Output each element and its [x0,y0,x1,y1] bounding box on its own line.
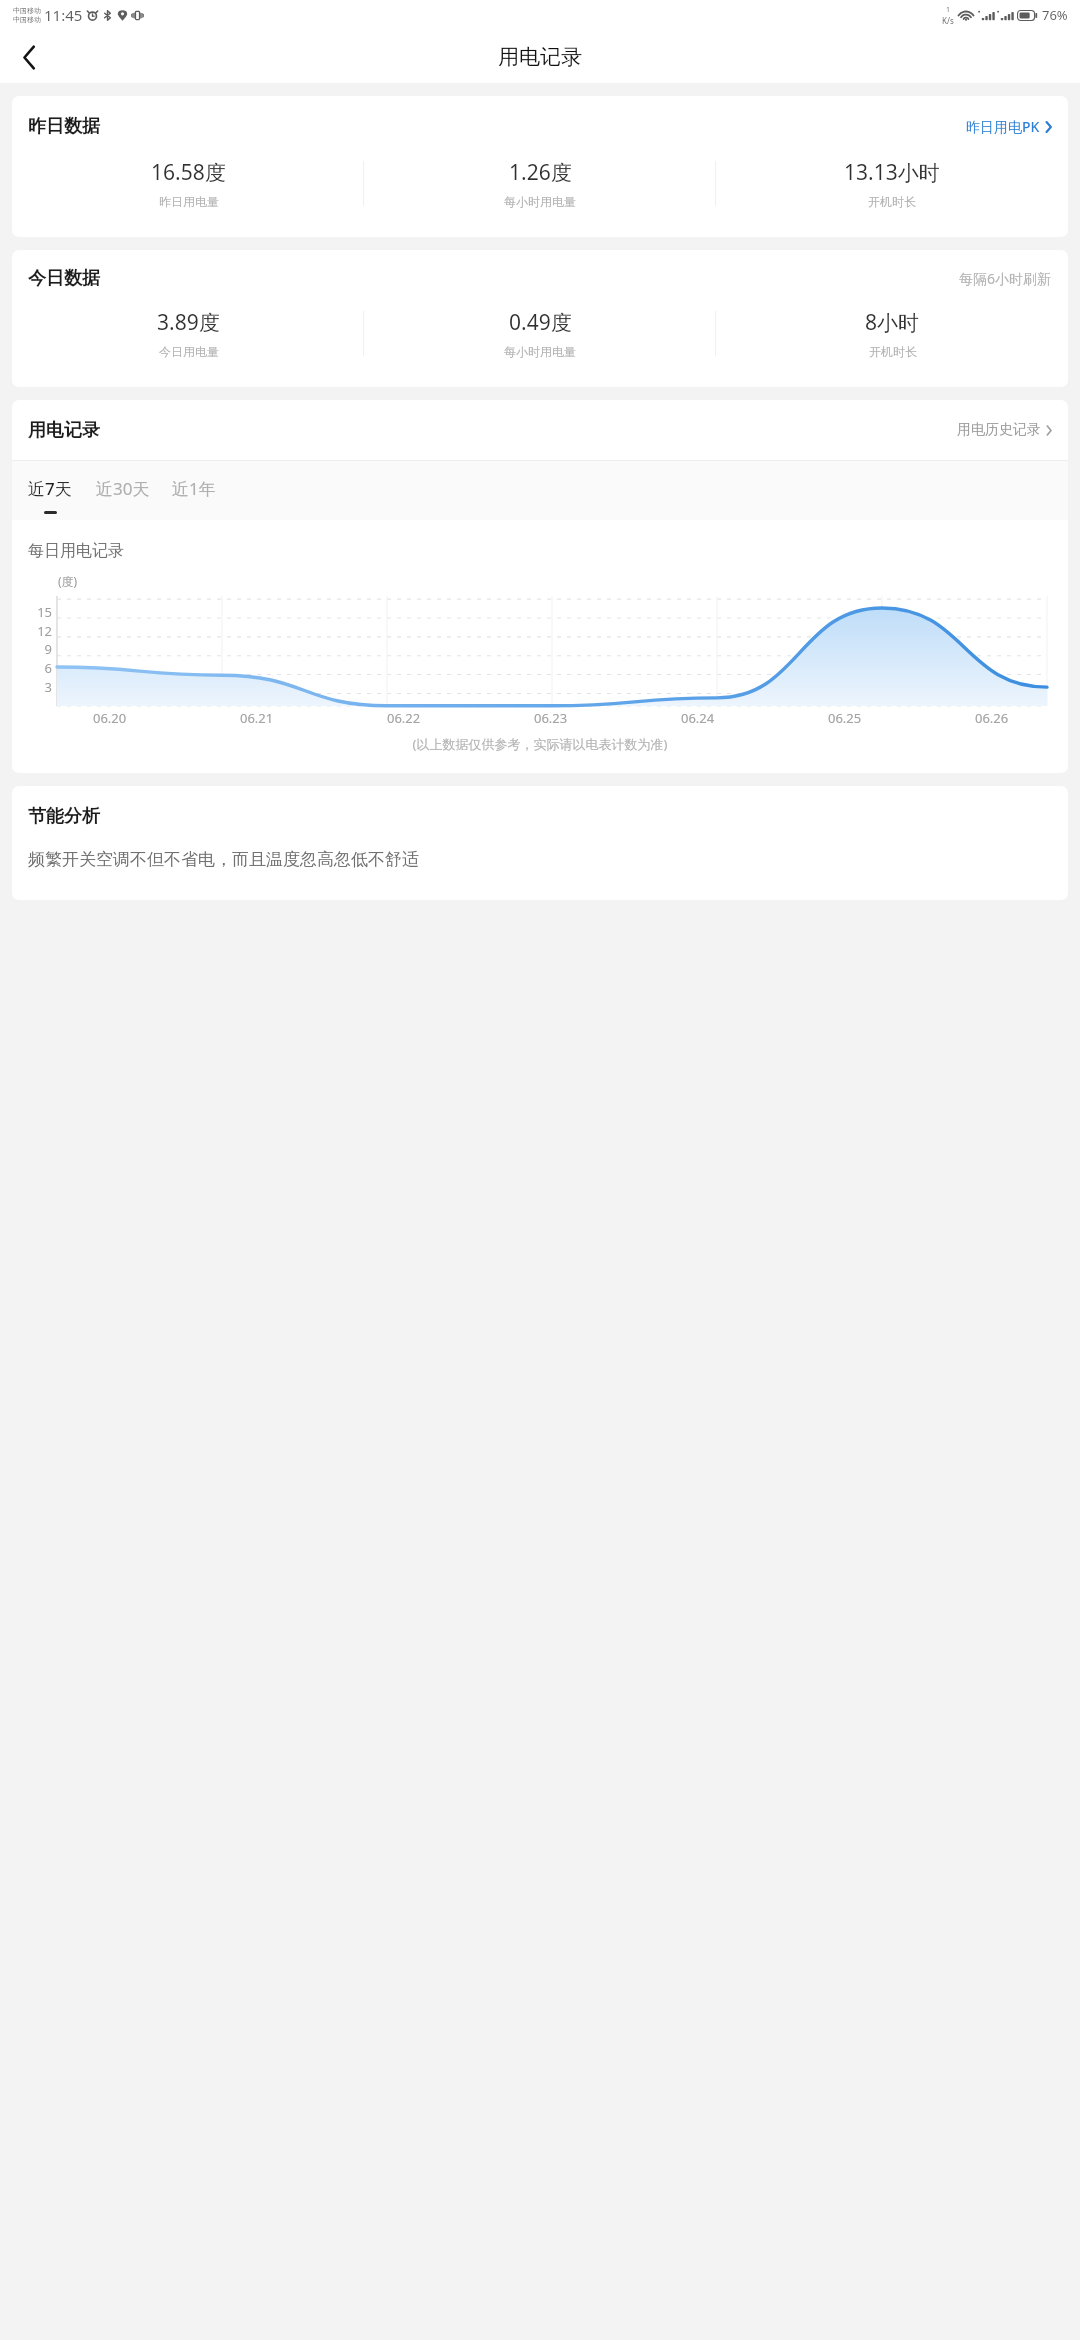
staticText: 3.89度 [157,308,220,337]
staticText: 06.21 [240,709,274,727]
staticText: 昨日数据 [28,115,100,138]
staticText: 3 [12,678,52,696]
staticText: 近1年 [172,477,216,500]
staticText: 8小时 [865,308,920,337]
staticText: 1 [946,5,951,15]
staticText: 06.26 [975,709,1009,727]
staticText: 16.58度 [151,158,226,187]
button[interactable]: 用电历史记录 [957,417,1052,443]
button[interactable]: 返回 [6,34,52,80]
staticText: 用电记录 [28,419,100,442]
staticText: 用电历史记录 [957,421,1041,439]
staticText: 近30天 [96,477,150,500]
button[interactable]: 近30天 [96,477,150,520]
staticText: 每隔6小时刷新 [959,269,1052,288]
staticText: 中国移动 [13,15,41,24]
staticText: 节能分析 [28,805,100,828]
button[interactable]: 近1年 [172,477,216,520]
staticText: K/s [942,15,954,26]
staticText: 每日用电记录 [28,541,124,561]
staticText: 06.22 [387,709,421,727]
button[interactable]: 近7天 [28,477,72,520]
staticText: 9 [12,640,52,658]
staticText: 76% [1042,6,1068,24]
staticText: (度) [58,573,78,589]
staticText: 12 [12,622,52,640]
staticText: 用电记录 [498,44,582,70]
staticText: 昨日用电量 [159,194,219,209]
button[interactable]: 昨日用电PK [966,113,1052,140]
staticText: 每小时用电量 [504,194,576,209]
staticText: 06.25 [828,709,862,727]
staticText: 频繁开关空调不但不省电，而且温度忽高忽低不舒适 [28,849,419,870]
staticText: 0.49度 [509,308,572,337]
staticText: 6 [12,659,52,677]
staticText: 11:45 [44,5,83,25]
staticText: 13.13小时 [844,158,940,187]
staticText: 中国移动 [13,6,41,15]
staticText: 昨日用电PK [966,117,1040,136]
staticText: 近7天 [28,477,72,500]
staticText: 1.26度 [509,158,572,187]
staticText: 今日用电量 [159,344,219,359]
staticText: 06.24 [681,709,715,727]
staticText: 06.20 [93,709,127,727]
staticText: 开机时长 [869,344,917,359]
staticText: (以上数据仅供参考，实际请以电表计数为准) [12,735,1068,753]
staticText: 今日数据 [28,267,100,290]
staticText: 开机时长 [868,194,916,209]
staticText: 15 [12,603,52,621]
staticText: 06.23 [534,709,568,727]
staticText: 每小时用电量 [504,344,576,359]
